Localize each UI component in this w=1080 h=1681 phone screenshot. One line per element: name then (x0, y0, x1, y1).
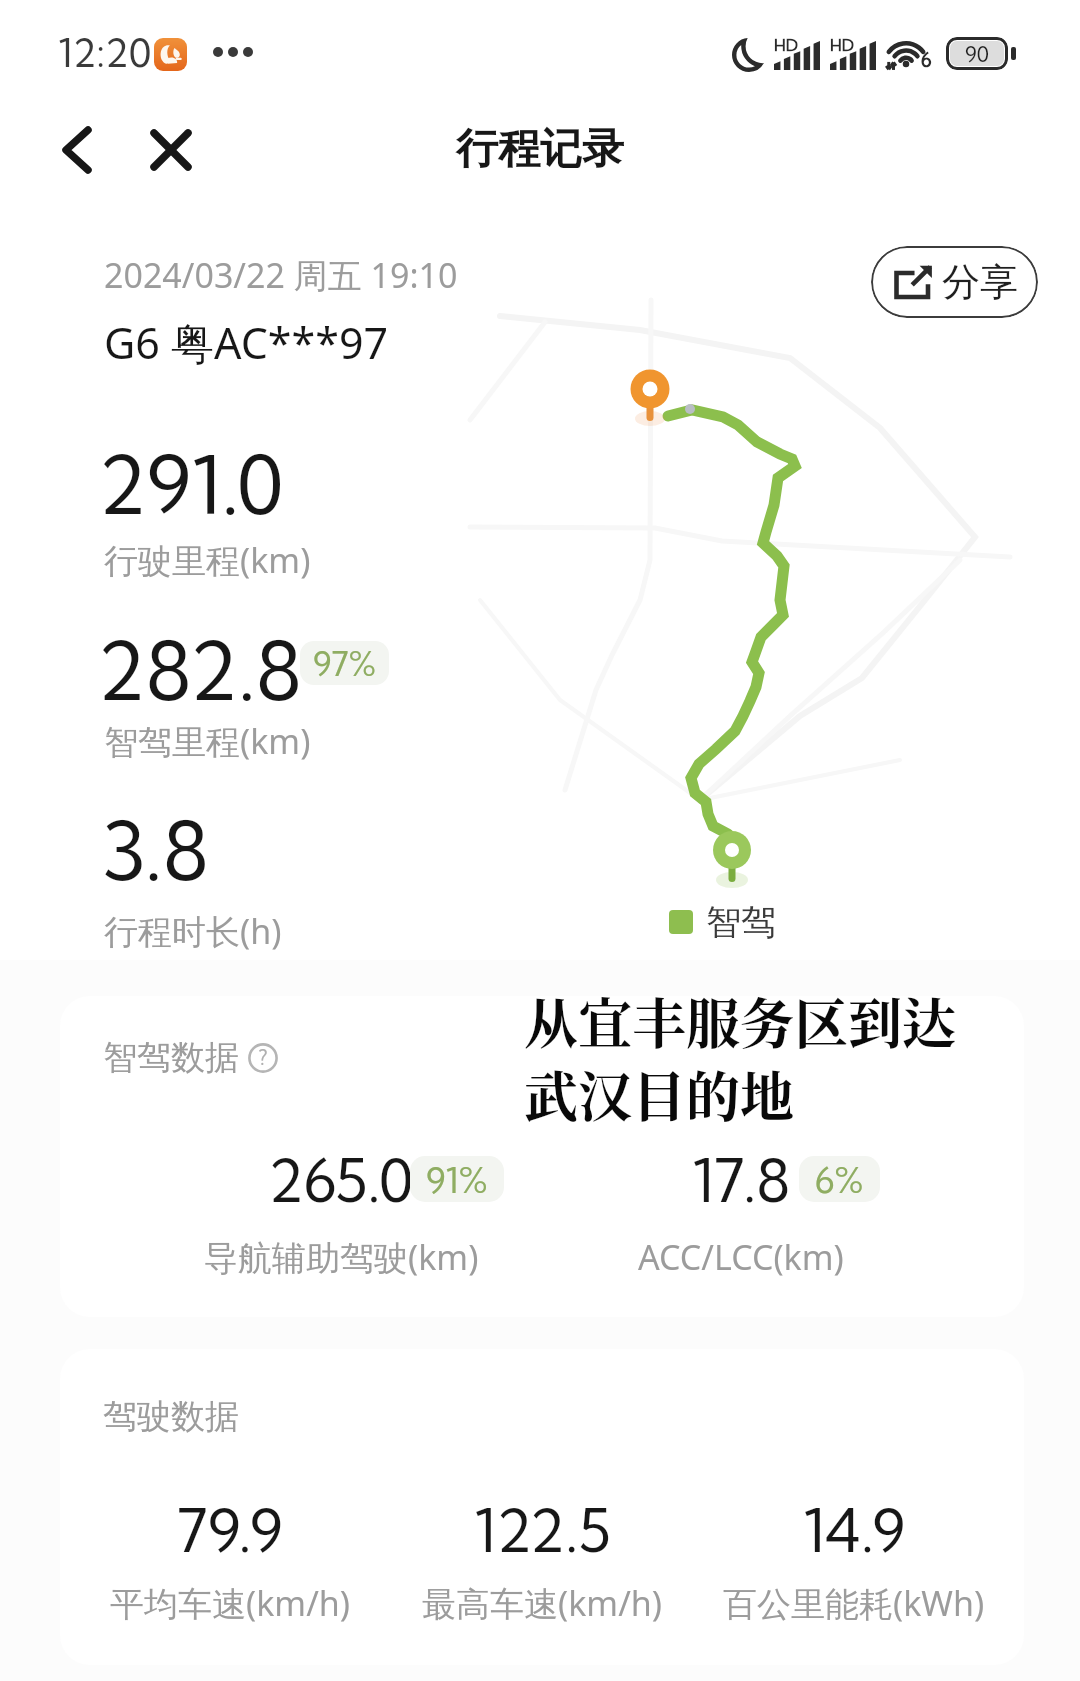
button[interactable]: Close (136, 115, 206, 185)
staticText: 90 (965, 41, 989, 66)
staticText: HD (774, 35, 798, 55)
staticText: 282.8 (97, 621, 302, 720)
staticText: 17.8 (692, 1144, 791, 1217)
staticText: 分享 (942, 258, 1018, 306)
staticText: 导航辅助驾驶(km) (204, 1234, 479, 1280)
staticText: 百公里能耗(kWh) (723, 1580, 985, 1626)
button[interactable]: 智驾数据 (60, 996, 1024, 1317)
staticText: ? (258, 1044, 268, 1070)
staticText: G6 粤AC***97 (104, 313, 389, 372)
staticText: 12:20 (58, 29, 152, 77)
staticText: 265.0 (268, 1144, 414, 1217)
staticText: 2024/03/22 周五 19:10 (104, 252, 458, 298)
button[interactable]: 分享 (871, 246, 1038, 318)
staticText: 智驾里程(km) (104, 718, 311, 764)
staticText: 97% (313, 643, 376, 684)
staticText: HD (830, 35, 854, 55)
staticText: 平均车速(km/h) (110, 1580, 351, 1626)
staticText: 291.0 (98, 435, 284, 534)
staticText: 91% (426, 1158, 488, 1201)
staticText: 最高车速(km/h) (422, 1580, 663, 1626)
staticText: 智驾数据 (103, 1036, 239, 1079)
staticText: 行程记录 (456, 123, 624, 176)
staticText: 驾驶数据 (103, 1395, 239, 1438)
button[interactable]: Back (42, 115, 112, 185)
staticText: 6 (921, 48, 932, 72)
staticText: 行驶里程(km) (104, 537, 311, 583)
staticText: 79.9 (177, 1494, 283, 1567)
button[interactable]: 驾驶数据 (60, 1349, 1024, 1665)
staticText: 3.8 (102, 801, 209, 900)
staticText: 6% (815, 1158, 864, 1201)
staticText: 行程时长(h) (104, 908, 282, 954)
staticText: 从宜丰服务区到达 武汉目的地 (524, 982, 956, 1133)
staticText: ACC/LCC(km) (638, 1234, 844, 1280)
staticText: 14.9 (803, 1494, 906, 1567)
staticText: 智驾 (706, 900, 776, 944)
staticText: 122.5 (474, 1494, 611, 1567)
